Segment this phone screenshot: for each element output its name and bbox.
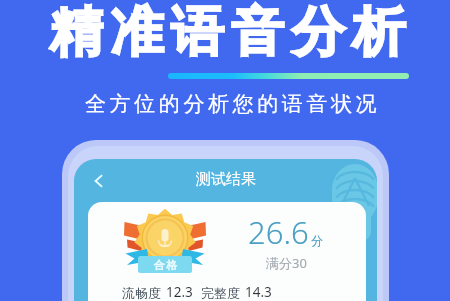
staticText: 分 bbox=[311, 233, 323, 248]
staticText: 完整度 bbox=[201, 285, 240, 301]
staticText: 全方位的分析您的语音状况 bbox=[85, 91, 381, 117]
button[interactable]: Back bbox=[84, 166, 114, 196]
staticText: 合格 bbox=[153, 258, 178, 272]
staticText: 精准语音分析 bbox=[46, 0, 409, 66]
staticText: 14.3 bbox=[245, 283, 272, 301]
staticText: 26.6 bbox=[248, 211, 309, 253]
staticText: 满分30 bbox=[266, 254, 307, 272]
staticText: 测试结果 bbox=[196, 170, 256, 189]
staticText: 12.3 bbox=[166, 283, 193, 301]
staticText: 流畅度 bbox=[122, 285, 161, 301]
